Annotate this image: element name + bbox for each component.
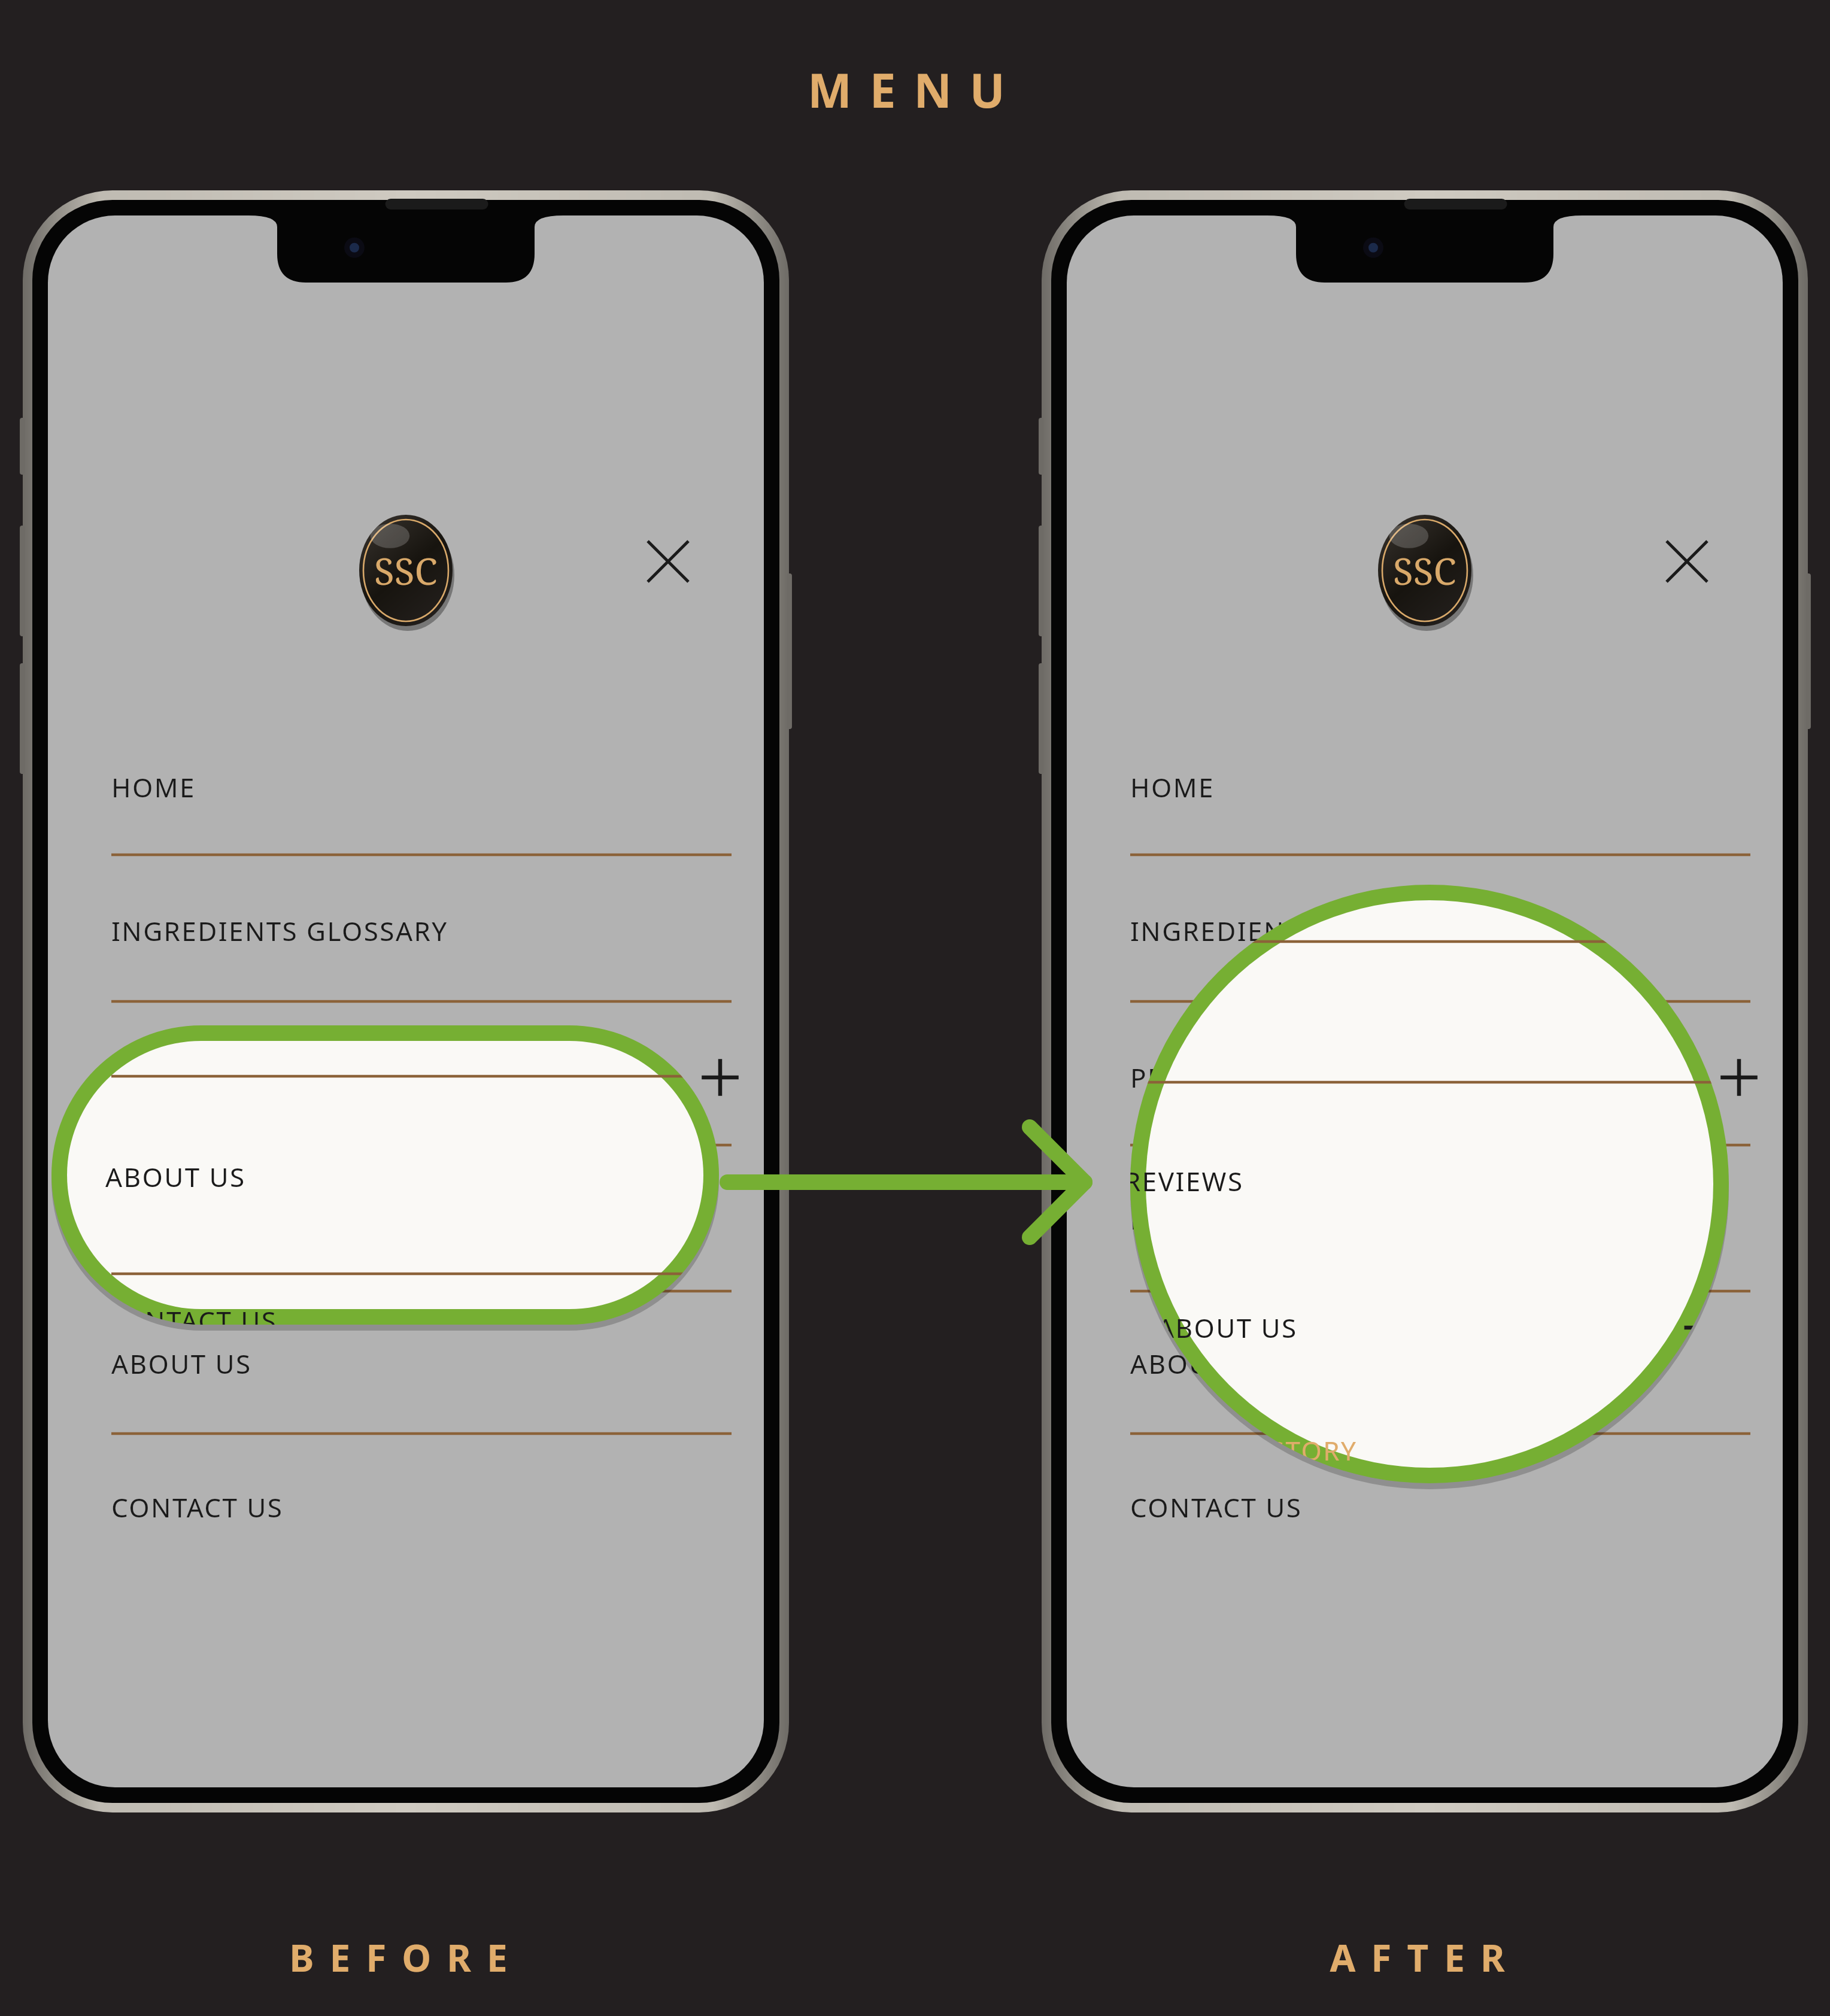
button[interactable]: SSC logo — [359, 515, 453, 626]
button[interactable]: Close menu — [1651, 526, 1723, 597]
staticText: PRODUCTS — [1130, 1059, 1279, 1095]
button[interactable]: OUR STORY — [1201, 1423, 1572, 1477]
staticText: INGREDIENTS GLOSSARY — [111, 913, 448, 949]
button[interactable]: REVIEWS — [1130, 1154, 1543, 1208]
button[interactable]: REVIEWS — [102, 1189, 741, 1249]
button[interactable]: REVIEWS — [1121, 1189, 1760, 1249]
staticText: HOME — [111, 769, 196, 805]
other: Collapse About Us — [1681, 1307, 1723, 1349]
staticText: CONTACT US — [111, 1489, 284, 1525]
button[interactable]: CONTACT US — [105, 1294, 524, 1325]
button[interactable]: Close menu — [632, 526, 704, 597]
other: Expand Products — [699, 1056, 741, 1098]
button[interactable]: ABOUT US — [105, 1150, 524, 1204]
staticText: CONTACT US — [105, 1302, 278, 1325]
staticText: ABOUT US — [105, 1159, 246, 1195]
button[interactable]: HOME — [102, 757, 741, 817]
button[interactable]: ABOUT US — [1121, 1334, 1760, 1393]
staticText: ABOUT US — [1157, 1310, 1298, 1346]
button[interactable]: PRODUCTS — [1121, 1048, 1760, 1107]
button[interactable]: ABOUT US — [102, 1334, 741, 1393]
staticText: INGREDIENTS GLOSSARY — [1130, 913, 1467, 949]
staticText: SSC — [1393, 545, 1456, 596]
button[interactable]: INGREDIENTS GLOSSARY — [102, 901, 741, 961]
staticText: ABOUT US — [1130, 1346, 1271, 1382]
button[interactable]: HOME — [1121, 757, 1760, 817]
button[interactable]: CONTACT US — [1121, 1477, 1760, 1537]
staticText: PRODUCTS — [111, 1059, 260, 1095]
staticText: AFTER — [1330, 1932, 1521, 1982]
staticText: CONTACT US — [1130, 1489, 1303, 1525]
staticText: MENU — [808, 58, 1023, 122]
button[interactable]: CONTACT US — [102, 1477, 741, 1537]
staticText: OUR STORY — [1201, 1432, 1358, 1468]
staticText: REVIEWS — [1130, 1163, 1244, 1199]
staticText: BEFORE — [289, 1932, 523, 1982]
staticText: ABOUT US — [111, 1346, 252, 1382]
staticText: SSC — [374, 545, 438, 596]
button[interactable]: PRODUCTS — [102, 1048, 741, 1107]
staticText: HOME — [1130, 769, 1215, 805]
button[interactable]: INGREDIENTS GLOSSARY — [1121, 901, 1760, 961]
button[interactable]: SSC logo — [1378, 515, 1471, 626]
other: Expand Products — [1718, 1056, 1760, 1098]
staticText: REVIEWS — [1130, 1201, 1250, 1237]
button[interactable]: ABOUT US — [1130, 1298, 1723, 1358]
